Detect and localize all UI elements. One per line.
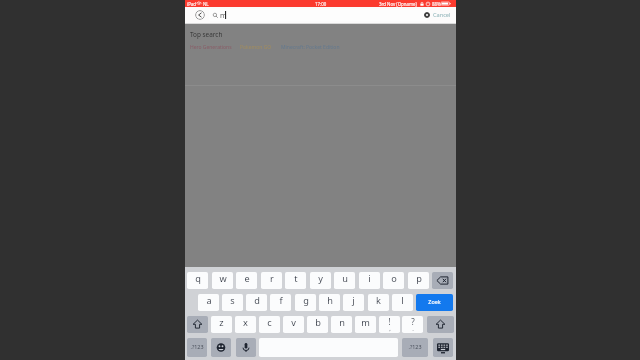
- button[interactable]: Cancel: [433, 11, 451, 19]
- staticText: p: [416, 272, 422, 285]
- staticText: h: [327, 294, 333, 307]
- button[interactable]: o: [383, 272, 404, 289]
- button[interactable]: y: [310, 272, 331, 289]
- staticText: l: [401, 294, 404, 307]
- button[interactable]: Minecraft: Pocket Edition: [281, 44, 340, 51]
- staticText: s: [230, 294, 235, 307]
- staticText: 17:00: [315, 1, 327, 7]
- button[interactable]: .?123: [187, 338, 207, 357]
- button[interactable]: Hide keyboard: [433, 338, 453, 357]
- staticText: k: [376, 294, 381, 307]
- staticText: q: [195, 272, 201, 285]
- button[interactable]: !: [379, 316, 400, 333]
- staticText: a: [206, 294, 212, 307]
- button[interactable]: Shift: [427, 316, 454, 333]
- button[interactable]: Backspace: [432, 272, 453, 289]
- staticText: ?: [411, 316, 415, 327]
- staticText: .?123: [408, 343, 422, 350]
- staticText: iPad: [187, 1, 196, 7]
- button[interactable]: Emoji: [211, 338, 231, 357]
- staticText: ,: [389, 325, 391, 333]
- button[interactable]: j: [343, 294, 364, 311]
- staticText: !: [388, 316, 391, 327]
- staticText: Zoek: [428, 298, 441, 305]
- staticText: 88%: [432, 1, 441, 7]
- button[interactable]: h: [319, 294, 340, 311]
- button[interactable]: Clear text: [424, 12, 430, 18]
- staticText: d: [254, 294, 260, 307]
- button[interactable]: .?123: [402, 338, 428, 357]
- button[interactable]: m: [209, 9, 427, 21]
- button[interactable]: s: [222, 294, 243, 311]
- staticText: n: [339, 316, 345, 329]
- button[interactable]: e: [236, 272, 257, 289]
- staticText: y: [318, 272, 323, 285]
- staticText: Cancel: [433, 11, 451, 19]
- button[interactable]: Pokemon GO: [240, 44, 272, 51]
- staticText: r: [270, 272, 274, 285]
- staticText: e: [244, 272, 250, 285]
- staticText: m: [220, 11, 227, 21]
- button[interactable]: w: [212, 272, 233, 289]
- button[interactable]: p: [408, 272, 429, 289]
- button[interactable]: u: [334, 272, 355, 289]
- button[interactable]: ?: [402, 316, 423, 333]
- button[interactable]: z: [211, 316, 232, 333]
- staticText: .: [412, 325, 414, 333]
- button[interactable]: c: [259, 316, 280, 333]
- button[interactable]: v: [283, 316, 304, 333]
- staticText: z: [219, 316, 224, 329]
- button[interactable]: Zoek: [416, 294, 453, 311]
- staticText: w: [219, 272, 227, 285]
- button[interactable]: q: [187, 272, 208, 289]
- button[interactable]: Hero Generations: [190, 44, 232, 51]
- staticText: u: [342, 272, 348, 285]
- button[interactable]: f: [270, 294, 291, 311]
- staticText: m: [361, 316, 370, 329]
- button[interactable]: n: [331, 316, 352, 333]
- button[interactable]: Dictate: [236, 338, 256, 357]
- staticText: Top search: [190, 30, 223, 39]
- button[interactable]: i: [359, 272, 380, 289]
- button[interactable]: b: [307, 316, 328, 333]
- staticText: g: [303, 294, 309, 307]
- button[interactable]: x: [235, 316, 256, 333]
- staticText: o: [391, 272, 397, 285]
- button[interactable]: a: [198, 294, 219, 311]
- staticText: 3rd Nov (Opname): [379, 1, 417, 7]
- staticText: j: [352, 294, 355, 307]
- button[interactable]: r: [261, 272, 282, 289]
- staticText: .?123: [190, 343, 204, 350]
- staticText: f: [279, 294, 283, 307]
- button[interactable]: g: [295, 294, 316, 311]
- button[interactable]: Back: [195, 10, 205, 20]
- staticText: v: [291, 316, 296, 329]
- button[interactable]: Shift: [187, 316, 208, 333]
- button[interactable]: m: [355, 316, 376, 333]
- staticText: i: [368, 272, 371, 285]
- staticText: c: [267, 316, 272, 329]
- staticText: NL: [203, 1, 209, 7]
- button[interactable]: d: [246, 294, 267, 311]
- staticText: t: [294, 272, 298, 285]
- button[interactable]: k: [368, 294, 389, 311]
- button[interactable]: t: [285, 272, 306, 289]
- staticText: b: [315, 316, 321, 329]
- button[interactable]: l: [392, 294, 413, 311]
- staticText: x: [243, 316, 248, 329]
